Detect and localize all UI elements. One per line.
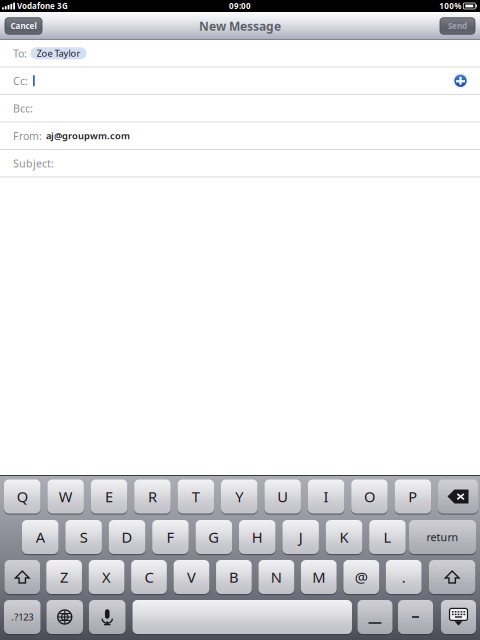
button[interactable]: T xyxy=(178,478,214,514)
button[interactable]: Z xyxy=(46,559,82,595)
button[interactable]: O xyxy=(351,478,388,514)
button[interactable]: A xyxy=(22,519,58,555)
staticText: Bcc: xyxy=(13,101,33,115)
staticText: D xyxy=(121,527,132,547)
staticText: New Message xyxy=(199,18,281,34)
button[interactable] xyxy=(429,559,475,595)
button[interactable]: H xyxy=(239,519,275,555)
button[interactable]: J xyxy=(282,519,319,555)
button[interactable]: X xyxy=(89,559,124,595)
staticText: J xyxy=(299,527,303,547)
button[interactable]: L xyxy=(369,519,406,555)
staticText: From: xyxy=(13,129,42,143)
staticText: X xyxy=(102,567,111,587)
staticText: S xyxy=(80,527,88,547)
staticText: R xyxy=(148,487,157,506)
staticText: return xyxy=(426,530,458,544)
staticText: C xyxy=(144,567,153,587)
button[interactable]: G xyxy=(196,519,232,555)
staticText: . xyxy=(402,567,406,587)
staticText: H xyxy=(252,527,263,547)
button[interactable]: Q xyxy=(4,478,40,514)
button[interactable]: return xyxy=(409,519,476,555)
staticText: To: xyxy=(13,46,27,60)
button[interactable]: M xyxy=(301,559,337,595)
button[interactable]: U xyxy=(264,478,301,514)
staticText: Cancel xyxy=(10,21,36,31)
button[interactable]: C xyxy=(131,559,167,595)
button[interactable]: P xyxy=(395,478,431,514)
staticText: Q xyxy=(17,487,28,506)
staticText: Cc: xyxy=(13,74,28,88)
button[interactable]: F xyxy=(152,519,189,555)
button[interactable]: . xyxy=(386,559,422,595)
staticText: Y xyxy=(235,487,243,506)
button[interactable]: .?123 xyxy=(4,599,40,635)
button[interactable] xyxy=(398,599,433,635)
button[interactable]: R xyxy=(134,478,171,514)
staticText: 100% xyxy=(439,1,461,11)
button[interactable]: Send xyxy=(440,18,475,34)
staticText: P xyxy=(408,487,417,506)
button[interactable] xyxy=(4,559,40,595)
staticText: Send xyxy=(448,21,467,31)
staticText: A xyxy=(36,527,45,547)
staticText: V xyxy=(187,567,196,587)
staticText: E xyxy=(105,487,113,506)
staticText: 09:00 xyxy=(229,1,251,11)
button[interactable] xyxy=(441,599,476,635)
staticText: Z xyxy=(60,567,68,587)
staticText: L xyxy=(383,527,391,547)
button[interactable]: Cancel xyxy=(5,18,42,34)
staticText: aj@groupwm.com xyxy=(46,130,130,142)
staticText: Zoe Taylor xyxy=(36,47,80,59)
staticText: U xyxy=(277,487,288,506)
staticText: N xyxy=(271,567,282,587)
staticText: O xyxy=(364,487,375,506)
staticText: .?123 xyxy=(11,611,33,623)
button[interactable]: B xyxy=(216,559,252,595)
button[interactable] xyxy=(46,599,83,635)
staticText: M xyxy=(312,567,325,587)
staticText: K xyxy=(340,527,349,547)
button[interactable]: Y xyxy=(221,478,257,514)
button[interactable]: I xyxy=(308,478,344,514)
button[interactable]: N xyxy=(258,559,294,595)
staticText: I xyxy=(324,487,329,506)
button[interactable] xyxy=(357,599,392,635)
button[interactable] xyxy=(132,599,352,635)
button[interactable]: V xyxy=(174,559,209,595)
staticText: @ xyxy=(355,567,368,587)
button[interactable]: D xyxy=(109,519,145,555)
staticText: Subject: xyxy=(13,156,54,170)
staticText: F xyxy=(166,527,174,547)
staticText: T xyxy=(192,487,200,506)
button[interactable]: Add recipient xyxy=(452,72,474,89)
button[interactable]: W xyxy=(47,478,84,514)
staticText: B xyxy=(229,567,239,587)
button[interactable] xyxy=(438,478,478,514)
button[interactable]: S xyxy=(65,519,102,555)
button[interactable]: E xyxy=(91,478,127,514)
staticText: G xyxy=(208,527,219,547)
staticText: Vodafone 3G xyxy=(17,1,68,11)
staticText: W xyxy=(59,487,73,506)
button[interactable]: @ xyxy=(343,559,379,595)
button[interactable]: K xyxy=(326,519,362,555)
button[interactable] xyxy=(89,599,125,635)
